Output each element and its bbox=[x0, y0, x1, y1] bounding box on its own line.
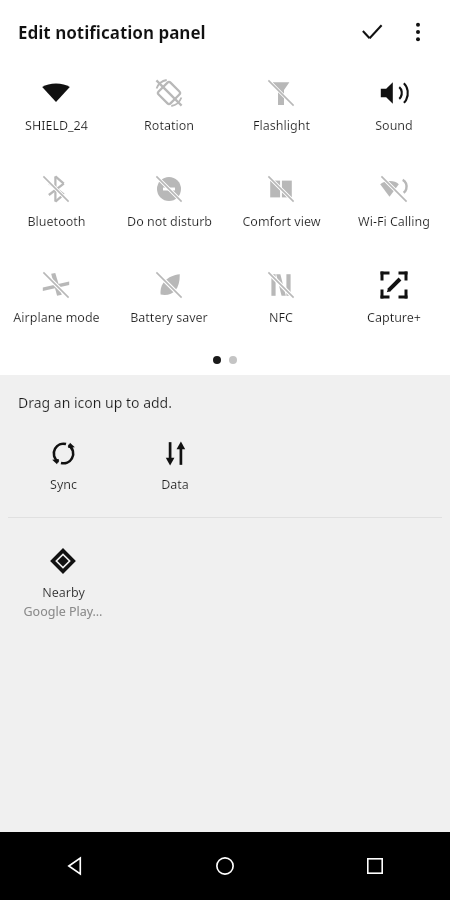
staticText: Drag an icon up to add. bbox=[18, 393, 172, 412]
staticText: Airplane mode bbox=[13, 309, 100, 326]
button[interactable]: Airplane mode bbox=[0, 268, 112, 328]
button[interactable]: SHIELD_24 bbox=[0, 76, 112, 136]
staticText: Rotation bbox=[144, 117, 194, 134]
staticText: NFC bbox=[269, 309, 293, 326]
button[interactable]: Comfort view bbox=[225, 172, 337, 232]
staticText: Do not disturb bbox=[127, 213, 212, 230]
button[interactable]: Back bbox=[0, 832, 150, 900]
staticText: Nearby bbox=[42, 584, 85, 601]
button[interactable]: Home bbox=[150, 832, 300, 900]
button[interactable]: Done bbox=[348, 8, 396, 56]
staticText: Google Play… bbox=[23, 603, 103, 620]
staticText: Sound bbox=[375, 117, 413, 134]
button[interactable]: Capture+ bbox=[338, 268, 450, 328]
staticText: Comfort view bbox=[242, 213, 321, 230]
staticText: SHIELD_24 bbox=[25, 117, 88, 134]
button[interactable]: Nearby bbox=[7, 545, 119, 622]
button[interactable]: Sync bbox=[7, 438, 119, 495]
staticText: Data bbox=[161, 476, 189, 493]
button[interactable]: Wi-Fi Calling bbox=[338, 172, 450, 232]
staticText: Wi-Fi Calling bbox=[358, 213, 430, 230]
staticText: Flashlight bbox=[253, 117, 310, 134]
staticText: Capture+ bbox=[367, 309, 421, 326]
button[interactable]: Battery saver bbox=[113, 268, 225, 328]
button[interactable]: Do not disturb bbox=[113, 172, 225, 232]
button[interactable]: Sound bbox=[338, 76, 450, 136]
staticText: Battery saver bbox=[130, 309, 208, 326]
staticText: Sync bbox=[50, 476, 77, 493]
button[interactable]: Recents bbox=[300, 832, 450, 900]
button[interactable]: Flashlight bbox=[225, 76, 337, 136]
button[interactable]: NFC bbox=[225, 268, 337, 328]
button[interactable]: Rotation bbox=[113, 76, 225, 136]
staticText: Edit notification panel bbox=[18, 21, 348, 44]
button[interactable]: More options bbox=[396, 10, 440, 54]
staticText: Bluetooth bbox=[27, 213, 86, 230]
button[interactable]: Data bbox=[119, 438, 231, 495]
button[interactable]: Bluetooth bbox=[0, 172, 112, 232]
